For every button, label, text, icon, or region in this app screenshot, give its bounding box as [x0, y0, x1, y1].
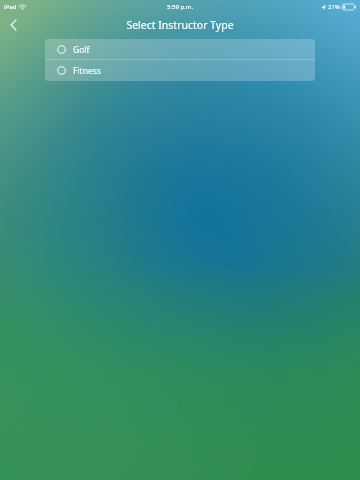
staticText: Select Instructor Type	[126, 18, 234, 32]
staticText: Golf	[73, 44, 90, 56]
button[interactable]: Golf	[45, 39, 315, 60]
button[interactable]: Fitness	[45, 60, 315, 81]
staticText: iPad	[4, 3, 17, 11]
staticText: Fitness	[73, 65, 101, 77]
staticText: 5:59 p.m.	[167, 3, 194, 11]
staticText: 21%	[328, 3, 340, 11]
button[interactable]: Back	[0, 13, 26, 36]
